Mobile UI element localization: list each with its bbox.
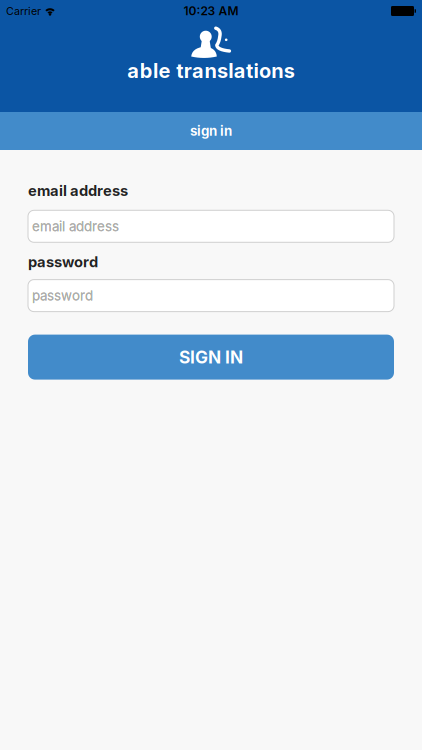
staticText: Carrier [6,5,41,17]
staticText: sign in [190,123,232,139]
button[interactable]: SIGN IN [28,335,394,380]
staticText: SIGN IN [179,347,243,367]
staticText: 10:23 AM [183,4,238,18]
staticText: password [32,288,93,303]
staticText: email address [32,218,119,234]
textField[interactable]: email address [32,218,394,234]
staticText: able translations [127,59,295,83]
staticText: password [28,253,98,271]
staticText: password [32,288,93,303]
staticText: email address [28,182,128,199]
textField[interactable]: password [32,288,394,303]
staticText: email address [32,218,119,234]
